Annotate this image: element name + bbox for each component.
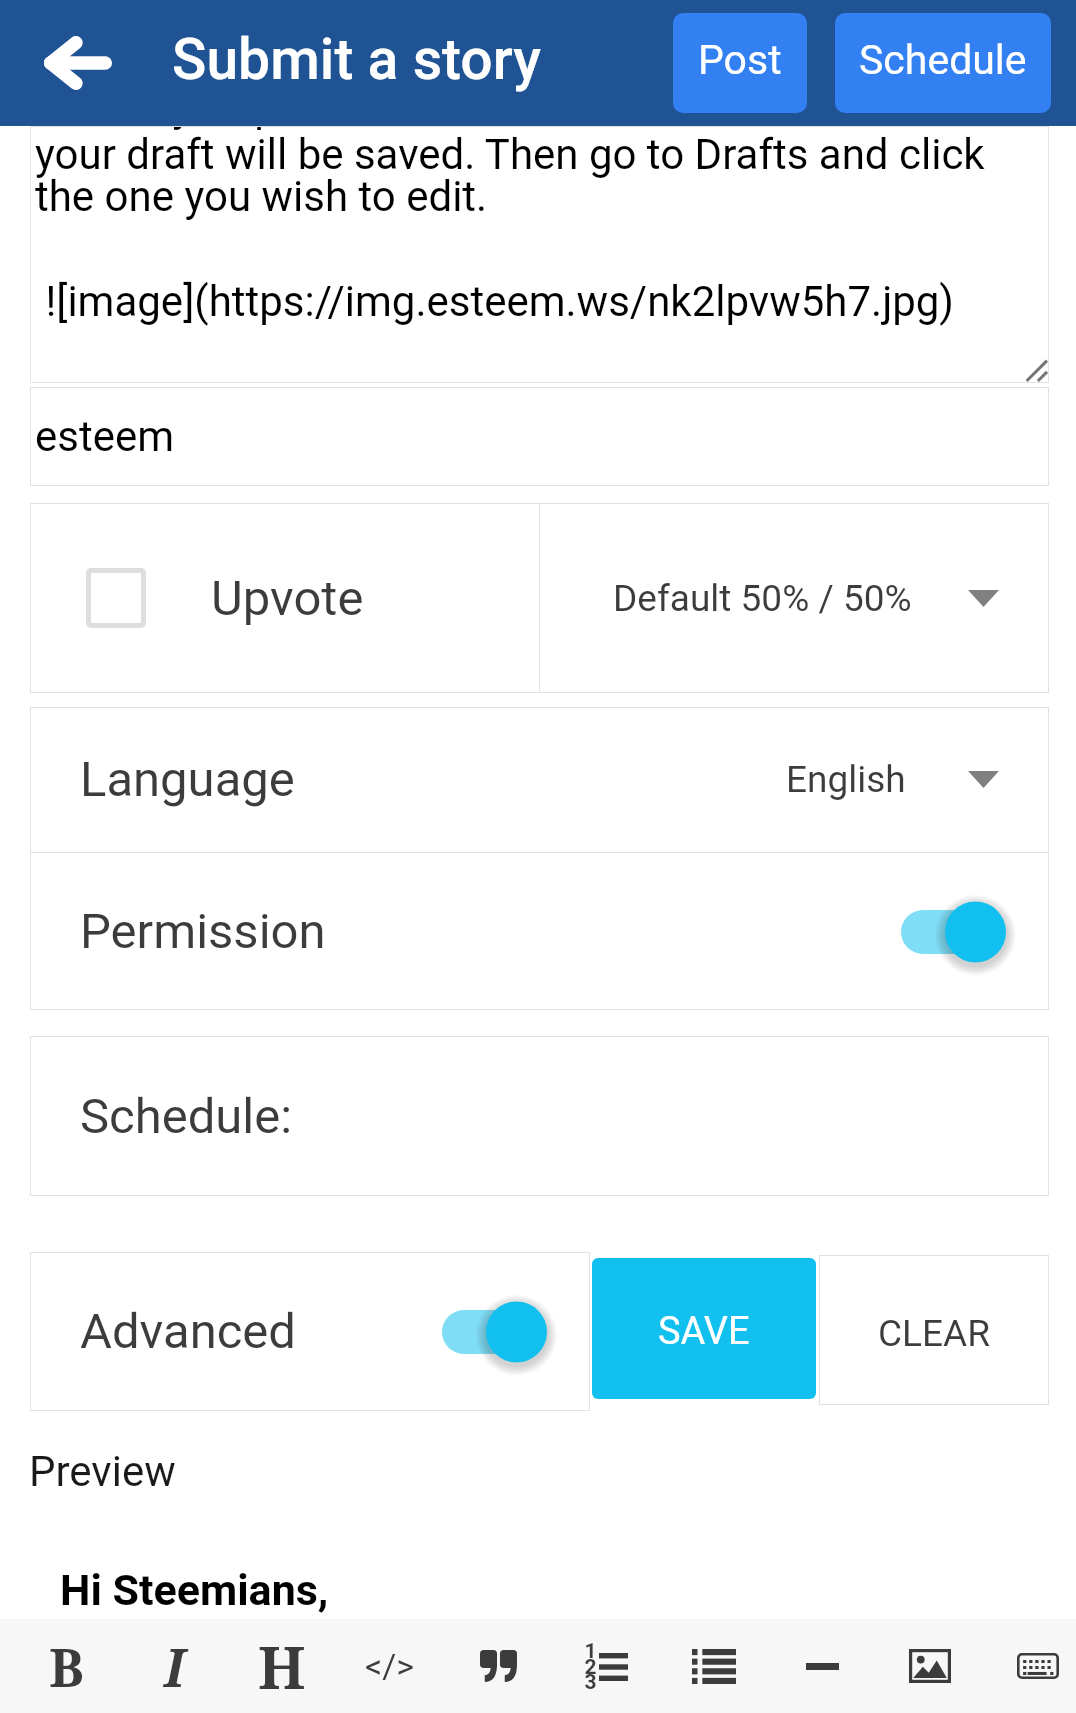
button[interactable]: CLEAR [819, 1255, 1049, 1405]
button[interactable]: Code [336, 1619, 444, 1713]
staticText: </> [365, 1646, 415, 1686]
button[interactable]: Schedule: [30, 1036, 1049, 1196]
button[interactable]: Language [30, 707, 1049, 852]
staticText: Hi Steemians, [60, 1565, 329, 1615]
button[interactable]: Schedule [835, 13, 1051, 113]
button[interactable]: Post [673, 13, 807, 113]
staticText: I [164, 1631, 185, 1702]
button[interactable]: Upvote [30, 503, 539, 693]
staticText: CLEAR [878, 1312, 990, 1355]
staticText: 1 2 3 [584, 1639, 597, 1694]
staticText: your draft will be saved. Then go to Dra… [35, 130, 985, 222]
staticText: H [258, 1627, 306, 1706]
staticText: Upvote [211, 570, 364, 627]
button[interactable]: Bulleted list [660, 1619, 768, 1713]
staticText: Advanced [80, 1303, 296, 1360]
staticText: English [786, 758, 906, 801]
staticText: a draft, just press the back button and, [35, 126, 747, 131]
button[interactable]: Horizontal rule [768, 1619, 876, 1713]
staticText: Preview [29, 1447, 176, 1496]
button[interactable]: Default 50% / 50% [540, 503, 1049, 693]
button[interactable]: Numbered list [552, 1619, 660, 1713]
button[interactable]: Advanced [30, 1252, 590, 1411]
staticText: Submit a story [172, 26, 541, 93]
button[interactable]: Keyboard [984, 1619, 1076, 1713]
staticText: esteem [35, 412, 175, 461]
button[interactable]: Insert image [876, 1619, 984, 1713]
button[interactable]: Bold [12, 1619, 120, 1713]
button[interactable]: Italic [120, 1619, 228, 1713]
staticText: B [49, 1631, 84, 1702]
staticText: Permission [80, 903, 326, 960]
staticText: Schedule [859, 36, 1027, 84]
staticText: Default 50% / 50% [613, 577, 912, 620]
staticText: Post [698, 36, 782, 84]
button[interactable]: Permission [30, 853, 1049, 1010]
staticText: Schedule: [80, 1088, 293, 1145]
button[interactable]: Navigate up [29, 14, 127, 112]
button[interactable]: Heading [228, 1619, 336, 1713]
button[interactable]: esteem [30, 387, 1049, 486]
staticText: ![image](https://img.esteem.ws/nk2lpvw5h… [35, 277, 954, 326]
button[interactable]: Quote [444, 1619, 552, 1713]
staticText: SAVE [658, 1309, 750, 1354]
button[interactable]: SAVE [592, 1258, 816, 1399]
staticText: Language [80, 751, 295, 808]
